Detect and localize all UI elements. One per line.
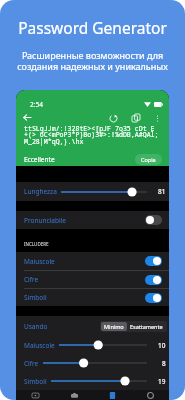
staticText: 10 xyxy=(158,341,166,350)
staticText: INCLUDERE xyxy=(24,241,49,247)
button[interactable]: Esattamente xyxy=(127,322,166,331)
staticText: Minimo xyxy=(104,323,124,330)
staticText: Cifre xyxy=(24,359,39,368)
staticText: 8 xyxy=(162,359,166,368)
button[interactable]: Vault xyxy=(55,390,93,400)
staticText: Password Generator xyxy=(6,17,179,38)
button[interactable]: Maiuscole xyxy=(16,336,169,354)
button[interactable]: Settings xyxy=(131,390,169,400)
button[interactable]: More options xyxy=(149,111,166,125)
staticText: Cifre xyxy=(24,275,39,284)
staticText: Pronunciabile xyxy=(24,216,66,225)
button[interactable]: Regenerate xyxy=(103,111,123,125)
button[interactable]: Simboli xyxy=(16,372,169,390)
button[interactable]: Copia xyxy=(135,154,162,165)
button[interactable]: Simboli xyxy=(16,289,169,306)
staticText: 2:54 xyxy=(30,100,43,109)
staticText: Usando xyxy=(24,322,48,331)
button[interactable]: Pronunciabile xyxy=(16,211,169,229)
staticText: 19 xyxy=(158,377,166,386)
staticText: Maiuscole xyxy=(24,257,55,266)
button[interactable]: Maiuscole xyxy=(16,252,169,270)
button[interactable]: Cifre xyxy=(16,354,169,372)
button[interactable]: Lunghezza xyxy=(16,182,169,201)
staticText: Расширенные возможности для создания над… xyxy=(4,49,181,73)
button[interactable]: Documents xyxy=(93,390,131,400)
staticText: Simboli xyxy=(24,377,47,386)
staticText: Esattamente xyxy=(130,323,163,330)
staticText: Simboli xyxy=(24,293,47,302)
button[interactable]: Minimo xyxy=(101,322,127,331)
button[interactable]: Copy xyxy=(123,111,149,125)
staticText: ttSLqJJm/:!328tE><[pJF 7o35 cDt E +(> 6C… xyxy=(24,124,159,146)
button[interactable]: Cifre xyxy=(16,271,169,288)
button[interactable]: Passwords xyxy=(16,390,55,400)
staticText: Lunghezza xyxy=(24,187,57,196)
staticText: Maiuscole xyxy=(24,341,55,350)
staticText: 81 xyxy=(158,187,166,196)
staticText: Eccellente xyxy=(24,155,55,164)
button[interactable]: Back xyxy=(19,110,34,125)
staticText: Copia xyxy=(141,156,156,163)
